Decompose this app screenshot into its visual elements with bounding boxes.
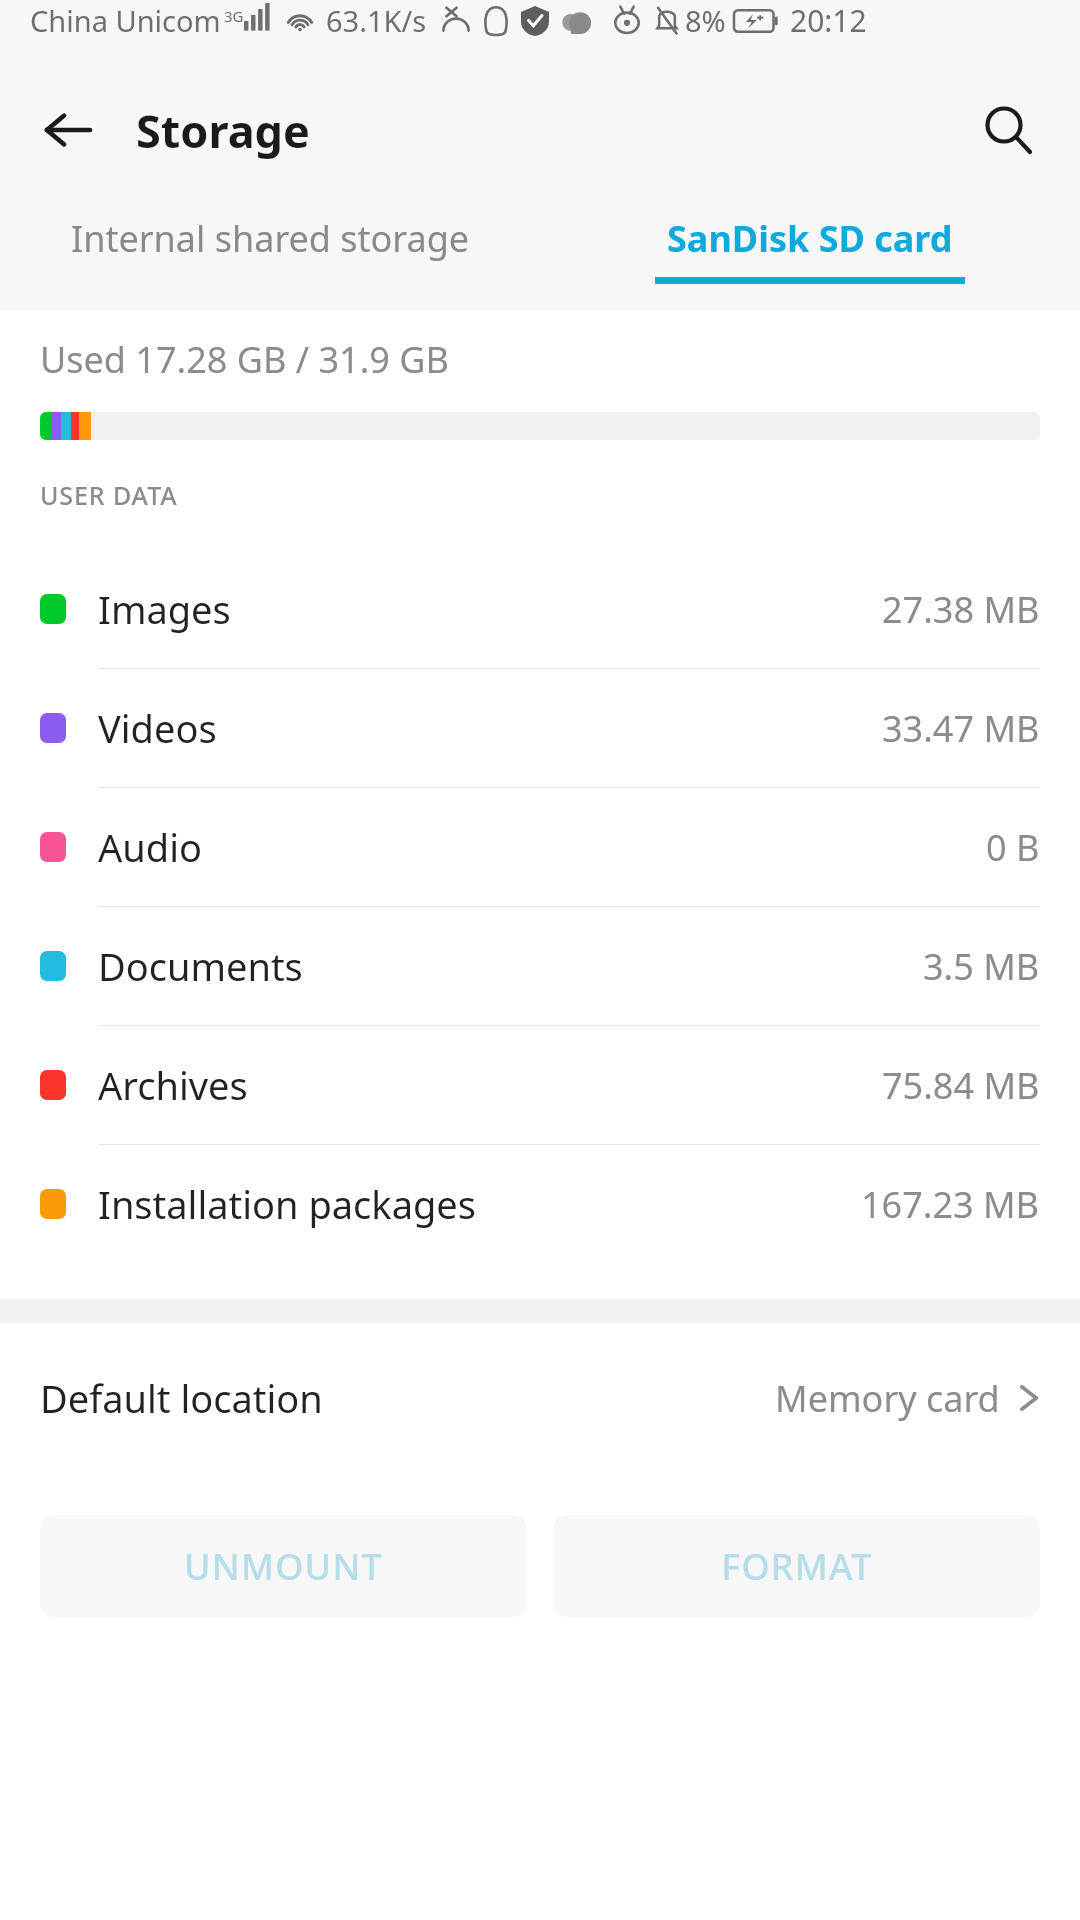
button[interactable]: Back bbox=[22, 84, 114, 176]
staticText: China Unicom bbox=[30, 1, 221, 40]
staticText: Used 17.28 GB / 31.9 GB bbox=[40, 335, 449, 384]
button[interactable]: Documents bbox=[0, 907, 1080, 1025]
staticText: SanDisk SD card bbox=[667, 214, 953, 263]
staticText: 3G bbox=[224, 6, 244, 26]
button[interactable]: Archives bbox=[0, 1026, 1080, 1144]
staticText: 33.47 MB bbox=[882, 704, 1040, 753]
staticText: USER DATA bbox=[40, 478, 178, 512]
button[interactable]: UNMOUNT bbox=[40, 1515, 527, 1617]
staticText: Internal shared storage bbox=[71, 214, 470, 263]
staticText: UNMOUNT bbox=[184, 1542, 383, 1591]
staticText: Memory card bbox=[775, 1374, 1000, 1423]
staticText: 167.23 MB bbox=[861, 1180, 1040, 1229]
staticText: 0 B bbox=[986, 823, 1040, 872]
staticText: Videos bbox=[98, 702, 217, 754]
button[interactable]: Installation packages bbox=[0, 1145, 1080, 1263]
staticText: 8% bbox=[685, 1, 726, 40]
staticText: Images bbox=[98, 583, 231, 635]
staticText: Storage bbox=[136, 100, 310, 161]
staticText: Installation packages bbox=[98, 1178, 476, 1230]
button[interactable]: SanDisk SD card bbox=[540, 190, 1080, 310]
staticText: 27.38 MB bbox=[882, 585, 1040, 634]
staticText: Audio bbox=[98, 821, 202, 873]
button[interactable]: Audio bbox=[0, 788, 1080, 906]
staticText: Documents bbox=[98, 940, 303, 992]
staticText: 20:12 bbox=[790, 0, 867, 41]
button[interactable]: Images bbox=[0, 550, 1080, 668]
staticText: 63.1K/s bbox=[326, 1, 427, 40]
staticText: 3.5 MB bbox=[923, 942, 1040, 991]
staticText: 75.84 MB bbox=[882, 1061, 1040, 1110]
staticText: Default location bbox=[40, 1372, 323, 1424]
staticText: Archives bbox=[98, 1059, 248, 1111]
button[interactable]: Videos bbox=[0, 669, 1080, 787]
button[interactable]: FORMAT bbox=[553, 1515, 1040, 1617]
button[interactable]: Internal shared storage bbox=[0, 190, 540, 310]
button[interactable]: Search bbox=[962, 84, 1054, 176]
staticText: FORMAT bbox=[721, 1542, 873, 1591]
button[interactable]: Default location bbox=[0, 1323, 1080, 1473]
